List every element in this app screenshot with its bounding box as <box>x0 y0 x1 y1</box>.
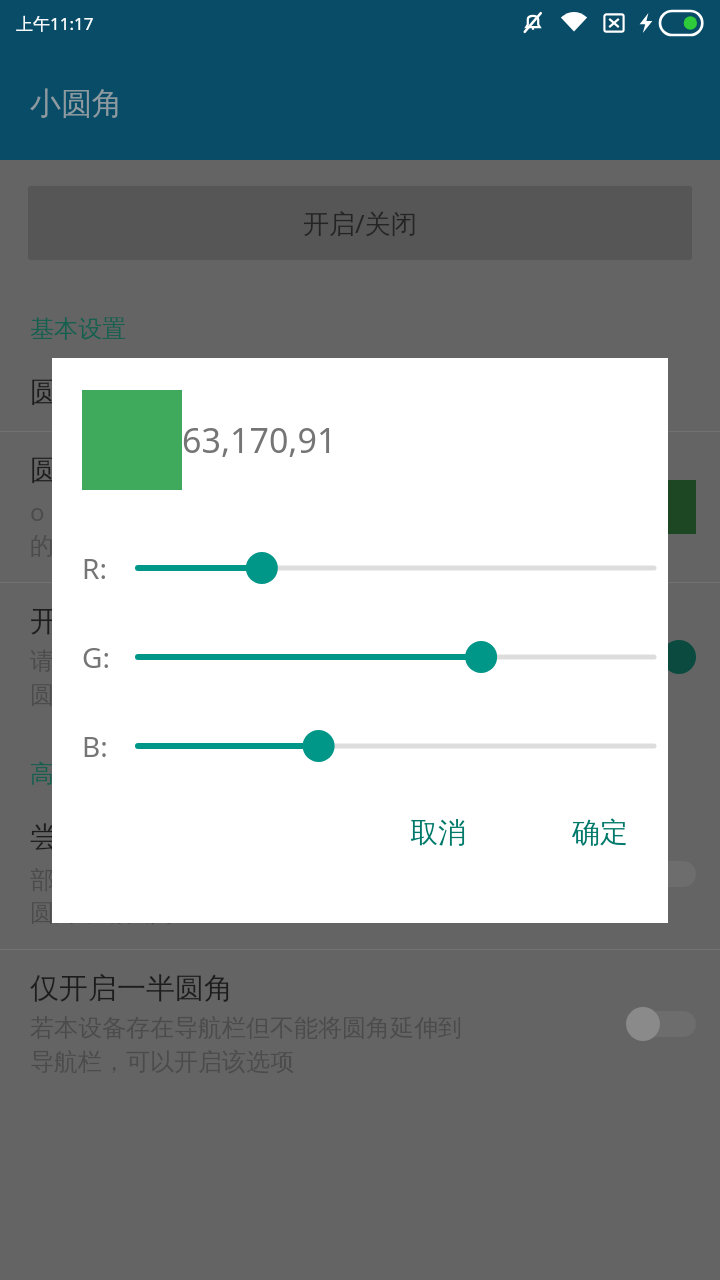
staticText: 请确保本应用处于后台运行 圆角可以正常显示 <box>30 646 318 711</box>
staticText: 上午11:17 <box>16 12 94 35</box>
staticText: 确定 <box>572 815 628 850</box>
staticText: 开启/关闭 <box>303 205 417 241</box>
button[interactable]: 确定 <box>554 807 646 858</box>
button[interactable]: G: <box>52 638 668 676</box>
button[interactable]: B: <box>52 727 668 765</box>
staticText: 基本设置 <box>30 314 126 344</box>
staticText: R: <box>82 549 107 587</box>
staticText: 63,170,91 <box>182 417 337 463</box>
staticText: o 点击上方的按钮即可开启 的圆角颜色 <box>30 495 315 562</box>
button[interactable]: 尝试延伸至导航栏 <box>0 799 720 949</box>
button[interactable]: 圆角大小 <box>0 354 720 431</box>
staticText: 开机自启 <box>30 603 146 640</box>
staticText: 小圆角 <box>30 84 123 123</box>
button[interactable]: Toggle <box>626 1007 696 1041</box>
button[interactable]: Toggle <box>626 857 696 891</box>
button[interactable]: R: <box>52 549 668 587</box>
button[interactable]: 开机自启 <box>0 583 720 731</box>
staticText: B: <box>82 727 108 765</box>
staticText: 尝试延伸至导航栏 <box>30 819 262 856</box>
staticText: 圆角颜色 <box>30 452 146 489</box>
staticText: 若本设备存在导航栏但不能将圆角延伸到 导航栏，可以开启该选项 <box>30 1013 462 1078</box>
button[interactable]: 圆角颜色 <box>0 432 720 582</box>
staticText: G: <box>82 638 110 676</box>
staticText: 高级设置 <box>30 759 126 789</box>
staticText: 部分rom不支持该功能，若开启后无法启用 圆角，请关闭 <box>30 862 485 929</box>
staticText: 取消 <box>410 815 466 850</box>
button[interactable]: 仅开启一半圆角 <box>0 950 720 1098</box>
button[interactable]: Toggle <box>626 640 696 674</box>
button[interactable]: 开启/关闭 <box>28 186 692 260</box>
staticText: 仅开启一半圆角 <box>30 970 233 1007</box>
staticText: 圆角大小 <box>30 374 146 411</box>
button[interactable]: 取消 <box>392 807 484 858</box>
